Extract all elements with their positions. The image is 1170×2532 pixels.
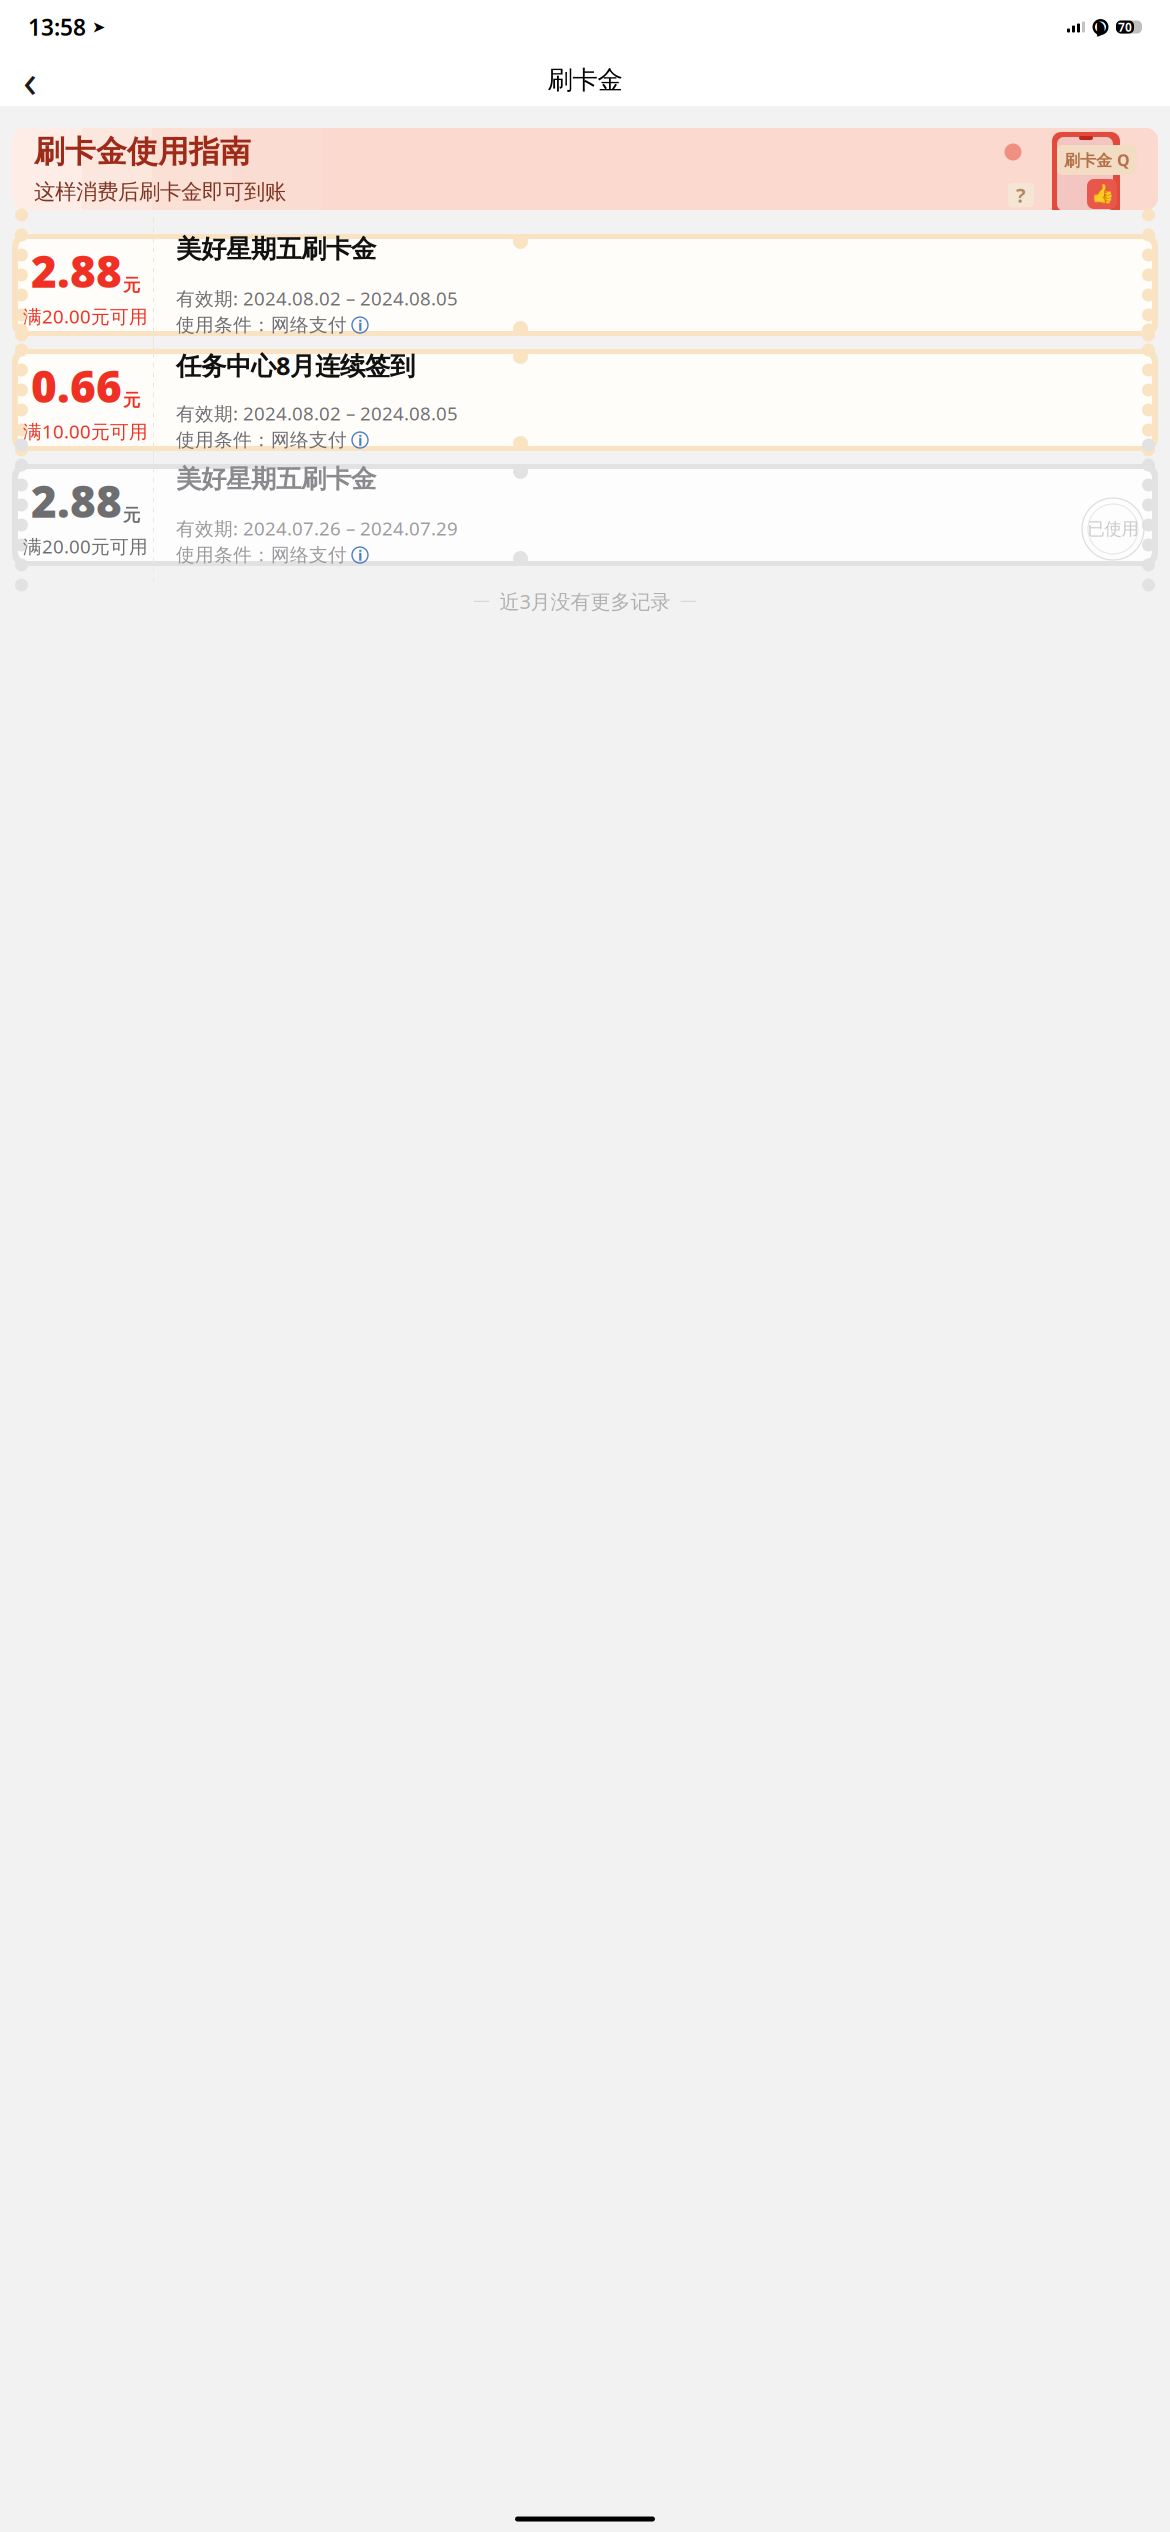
- staticText: 已使用: [1087, 518, 1138, 540]
- staticText: 0.66: [31, 356, 122, 415]
- staticText: 刷卡金 Q: [1064, 149, 1130, 171]
- staticText: 2.88: [31, 471, 122, 530]
- staticText: 满10.00元可用: [23, 419, 148, 444]
- staticText: 刷卡金使用指南: [34, 133, 251, 171]
- staticText: 有效期: 2024.07.26 – 2024.07.29: [176, 516, 458, 541]
- staticText: 13:58: [28, 12, 86, 42]
- staticText: 使用条件：网络支付: [176, 544, 347, 566]
- staticText: 有效期: 2024.08.02 – 2024.08.05: [176, 286, 458, 311]
- button[interactable]: 刷卡金使用指南: [12, 128, 1158, 210]
- staticText: ➤: [92, 18, 105, 36]
- staticText: 这样消费后刷卡金即可到账: [34, 179, 286, 205]
- staticText: 元: [123, 274, 140, 296]
- button[interactable]: 0.66: [12, 349, 1158, 451]
- staticText: 美好星期五刷卡金: [176, 233, 376, 265]
- staticText: ‹: [23, 50, 37, 110]
- button[interactable]: 返回: [8, 58, 52, 102]
- staticText: 刷卡金: [547, 64, 622, 95]
- staticText: ?: [1016, 182, 1026, 208]
- staticText: 2.88: [31, 241, 122, 300]
- staticText: i: [358, 315, 362, 335]
- staticText: i: [358, 430, 362, 450]
- staticText: 元: [123, 504, 140, 526]
- staticText: 有效期: 2024.08.02 – 2024.08.05: [176, 401, 458, 426]
- staticText: 满20.00元可用: [23, 534, 148, 559]
- button[interactable]: 2.88: [12, 234, 1158, 336]
- staticText: 美好星期五刷卡金: [176, 463, 376, 495]
- button[interactable]: 2.88: [12, 464, 1158, 566]
- staticText: 👍: [1090, 183, 1113, 205]
- staticText: 满20.00元可用: [23, 304, 148, 329]
- staticText: 使用条件：网络支付: [176, 429, 347, 451]
- staticText: ◗: [1095, 16, 1106, 38]
- staticText: 近3月没有更多记录: [499, 588, 670, 615]
- staticText: 元: [123, 389, 140, 411]
- staticText: 任务中心8月连续签到: [176, 348, 415, 382]
- staticText: i: [358, 545, 362, 565]
- staticText: 使用条件：网络支付: [176, 314, 347, 336]
- staticText: 70: [1118, 19, 1132, 35]
